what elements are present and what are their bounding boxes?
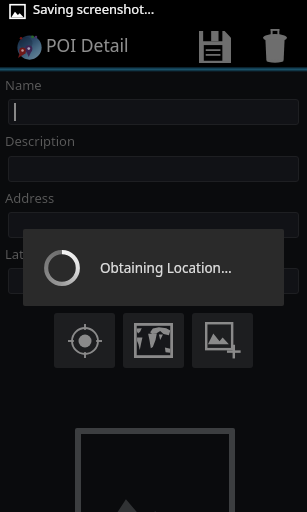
button[interactable]: Delete <box>253 24 296 67</box>
button[interactable] <box>8 156 299 182</box>
staticText: Description <box>5 132 75 150</box>
staticText: Saving screenshot… <box>33 0 155 18</box>
staticText: Address <box>5 189 55 207</box>
staticText: Name <box>5 76 42 94</box>
staticText: POI Detail <box>46 33 129 57</box>
staticText: Obtaining Location… <box>100 259 232 277</box>
button[interactable]: Save <box>193 25 236 68</box>
button[interactable] <box>8 212 299 238</box>
button[interactable]: Photo <box>75 428 235 512</box>
button[interactable] <box>8 99 299 125</box>
button[interactable] <box>8 268 299 294</box>
button[interactable]: My Location <box>54 313 115 368</box>
button[interactable]: Add photo <box>192 313 253 368</box>
staticText: Latitude <box>5 245 56 263</box>
button[interactable]: Map <box>123 313 184 368</box>
